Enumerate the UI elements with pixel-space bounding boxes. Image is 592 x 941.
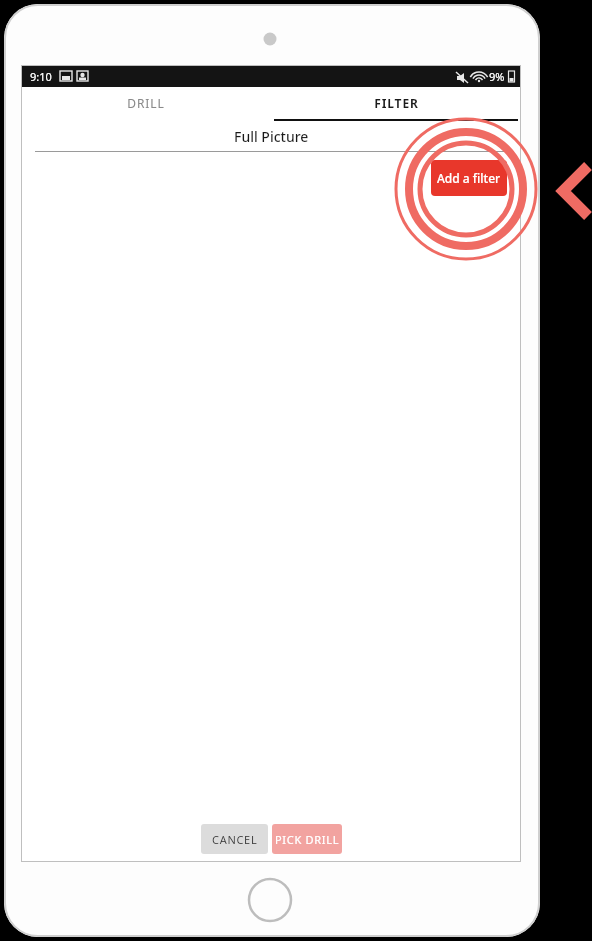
button[interactable]: CANCEL — [201, 824, 268, 854]
button[interactable]: Add a filter — [431, 160, 507, 196]
staticText: Add a filter — [437, 170, 501, 186]
staticText: CANCEL — [212, 832, 258, 847]
button[interactable]: Full Picture — [21, 121, 521, 151]
staticText: Full Picture — [234, 127, 309, 146]
staticText: 9:10 — [30, 69, 52, 84]
staticText: DRILL — [127, 95, 165, 111]
staticText: PICK DRILL — [275, 832, 340, 847]
button[interactable]: FILTER — [271, 87, 521, 119]
staticText: FILTER — [374, 95, 419, 111]
button[interactable]: PICK DRILL — [272, 824, 342, 854]
staticText: 9% — [489, 69, 505, 84]
other: Add a filter highlight — [0, 0, 592, 941]
other: Previous — [0, 0, 592, 941]
button[interactable]: DRILL — [21, 87, 271, 119]
